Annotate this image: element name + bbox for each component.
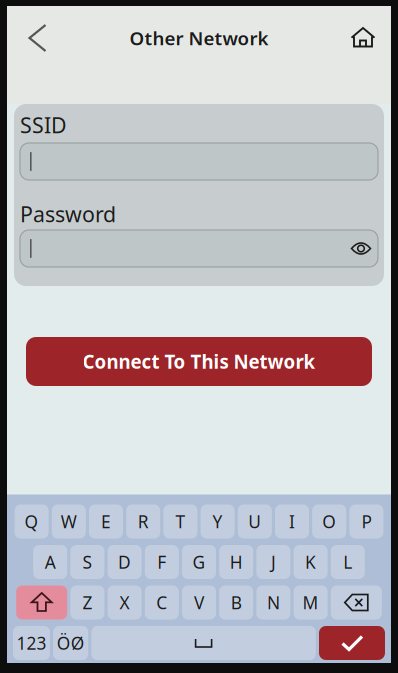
staticText: N [267,591,280,614]
staticText: Z [82,591,92,614]
button[interactable]: Delete [331,585,382,619]
staticText: Other Network [129,26,268,50]
button[interactable]: N [256,585,290,619]
staticText: D [118,550,131,573]
button[interactable]: K [294,545,328,579]
button[interactable]: U [238,504,272,538]
button[interactable]: Space [91,626,316,660]
button[interactable]: M [294,585,328,619]
button[interactable]: ÖØ [53,626,88,660]
button[interactable]: L [331,545,365,579]
button[interactable]: S [70,545,104,579]
button[interactable]: T [163,504,197,538]
button[interactable]: V [182,585,216,619]
staticText: X [120,591,130,614]
button[interactable]: O [312,504,346,538]
staticText: Connect To This Network [82,349,315,374]
staticText: U [248,510,261,533]
button[interactable]: X [108,585,142,619]
button[interactable]: G [182,545,216,579]
button[interactable]: H [219,545,253,579]
staticText: ÖØ [57,631,85,654]
staticText: 123 [16,631,46,654]
button[interactable]: Back [13,16,57,60]
staticText: A [45,550,56,573]
button[interactable]: Y [201,504,235,538]
staticText: F [157,550,166,573]
button[interactable]: Connect To This Network [26,337,372,386]
button[interactable]: C [145,585,179,619]
button[interactable]: F [145,545,179,579]
button[interactable]: Show password [344,233,378,263]
button[interactable]: Enter [319,626,385,660]
staticText: G [192,550,205,573]
staticText: P [361,510,371,533]
button[interactable]: R [126,504,160,538]
staticText: S [82,550,92,573]
button[interactable]: A [33,545,67,579]
staticText: K [305,550,316,573]
button[interactable]: E [89,504,123,538]
staticText: B [231,591,242,614]
staticText: SSID [20,111,67,139]
button[interactable]: Shift [16,585,67,619]
staticText: T [175,510,185,533]
staticText: Y [213,510,223,533]
staticText: E [101,510,111,533]
staticText: L [343,550,352,573]
button[interactable]: D [108,545,142,579]
staticText: Q [25,510,39,533]
button[interactable]: W [52,504,86,538]
staticText: M [303,591,319,614]
button[interactable]: Q [15,504,49,538]
button[interactable]: B [219,585,253,619]
button[interactable]: 123 [13,626,50,660]
staticText: I [289,510,295,533]
button[interactable]: Z [70,585,104,619]
staticText: H [230,550,243,573]
button[interactable]: J [256,545,290,579]
button[interactable]: Home [341,16,385,60]
staticText: R [138,510,149,533]
staticText: C [156,591,167,614]
button[interactable]: I [275,504,309,538]
staticText: O [322,510,336,533]
staticText: Password [20,200,116,228]
staticText: V [194,591,204,614]
staticText: J [271,550,276,573]
staticText: W [61,510,77,533]
button[interactable]: P [349,504,383,538]
